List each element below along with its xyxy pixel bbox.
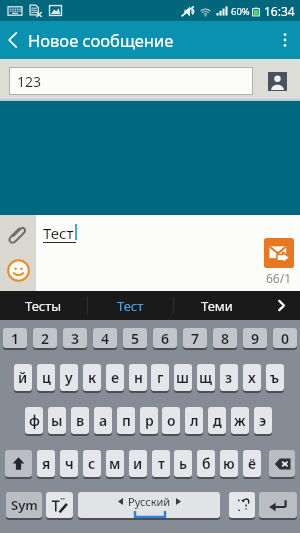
staticText: Русский	[128, 494, 171, 509]
staticText: ю	[223, 454, 235, 473]
button[interactable]: э	[254, 407, 272, 434]
button[interactable]: м	[106, 450, 124, 477]
button[interactable]: ь	[174, 450, 192, 477]
button[interactable]: я	[37, 450, 55, 477]
button[interactable]: б	[197, 450, 215, 477]
button[interactable]: Тесты	[0, 291, 87, 320]
button[interactable]: Attach	[7, 223, 28, 244]
button[interactable]: Теми	[174, 291, 260, 320]
staticText: 7	[191, 329, 200, 348]
button[interactable]: Тест	[36, 215, 260, 291]
button[interactable]: х	[243, 364, 261, 391]
button[interactable]: Punctuation	[229, 492, 255, 518]
staticText: ъ	[270, 368, 280, 387]
button[interactable]: Emoji	[7, 259, 30, 282]
staticText: Sym	[11, 496, 38, 514]
button[interactable]: к	[83, 364, 101, 391]
button[interactable]: н	[129, 364, 147, 391]
button[interactable]: 0	[273, 328, 297, 348]
button[interactable]: 7	[183, 328, 207, 348]
button[interactable]: щ	[197, 364, 215, 391]
button[interactable]: е	[106, 364, 124, 391]
staticText: э	[259, 411, 267, 430]
button[interactable]: й	[14, 364, 32, 391]
staticText: з	[225, 368, 233, 387]
staticText: г	[157, 368, 164, 387]
staticText: н	[134, 368, 143, 387]
staticText: Тесты	[25, 297, 62, 315]
staticText: Новое сообщение	[28, 29, 174, 51]
button[interactable]: ц	[37, 364, 55, 391]
button[interactable]: 8	[213, 328, 237, 348]
button[interactable]: Back	[0, 21, 25, 59]
staticText: м	[109, 454, 121, 473]
button[interactable]: Тест	[88, 291, 173, 320]
button[interactable]: Shift	[5, 450, 32, 477]
button[interactable]: и	[129, 450, 147, 477]
button[interactable]: г	[151, 364, 169, 391]
button[interactable]: 1	[3, 328, 27, 348]
staticText: 9	[251, 329, 260, 348]
staticText: й	[18, 368, 28, 387]
staticText: е	[111, 368, 120, 387]
button[interactable]: л	[185, 407, 203, 434]
button[interactable]: а	[94, 407, 112, 434]
button[interactable]: р	[140, 407, 158, 434]
button[interactable]: ч	[60, 450, 78, 477]
staticText: а	[99, 411, 108, 430]
button[interactable]: ы	[48, 407, 66, 434]
staticText: 3	[71, 329, 80, 348]
button[interactable]: у	[60, 364, 78, 391]
staticText: с	[88, 454, 96, 473]
staticText: 0	[281, 329, 290, 348]
button[interactable]: ё	[243, 450, 261, 477]
button[interactable]: More suggestions	[262, 291, 300, 320]
staticText: 66/1	[266, 270, 292, 286]
staticText: б	[202, 454, 211, 473]
staticText: 6	[161, 329, 170, 348]
staticText: ж	[234, 411, 246, 430]
staticText: л	[190, 411, 199, 430]
button[interactable]: 9	[243, 328, 267, 348]
staticText: 5	[131, 329, 140, 348]
staticText: 2	[41, 329, 50, 348]
staticText: Тест	[43, 223, 74, 243]
button[interactable]: п	[117, 407, 135, 434]
staticText: ь	[179, 454, 188, 473]
button[interactable]: Enter	[259, 492, 297, 518]
staticText: я	[42, 454, 51, 473]
staticText: т	[158, 454, 165, 473]
button[interactable]: ф	[25, 407, 43, 434]
staticText: ё	[248, 454, 257, 473]
button[interactable]: ж	[231, 407, 249, 434]
staticText: п	[122, 411, 131, 430]
button[interactable]: с	[83, 450, 101, 477]
button[interactable]: 4	[93, 328, 117, 348]
button[interactable]: 123	[17, 67, 253, 95]
button[interactable]: з	[220, 364, 238, 391]
button[interactable]: ъ	[266, 364, 284, 391]
button[interactable]: т	[152, 450, 170, 477]
button[interactable]: 6	[153, 328, 177, 348]
button[interactable]: 2	[33, 328, 57, 348]
button[interactable]: Space	[78, 492, 220, 518]
button[interactable]: ш	[174, 364, 192, 391]
staticText: у	[65, 368, 73, 387]
button[interactable]: Sym	[6, 492, 42, 518]
staticText: 1	[11, 329, 20, 348]
button[interactable]: Backspace	[269, 450, 295, 477]
button[interactable]: 5	[123, 328, 147, 348]
button[interactable]: о	[162, 407, 180, 434]
button[interactable]: Handwriting	[46, 492, 73, 518]
button[interactable]: More options	[270, 21, 300, 59]
button[interactable]: Send	[264, 238, 294, 268]
button[interactable]: Contacts	[262, 67, 292, 95]
button[interactable]: ю	[220, 450, 238, 477]
staticText: 8	[221, 329, 230, 348]
button[interactable]: в	[71, 407, 89, 434]
button[interactable]: д	[208, 407, 226, 434]
button[interactable]: 3	[63, 328, 87, 348]
staticText: х	[248, 368, 256, 387]
staticText: д	[213, 411, 222, 430]
staticText: 4	[101, 329, 110, 348]
